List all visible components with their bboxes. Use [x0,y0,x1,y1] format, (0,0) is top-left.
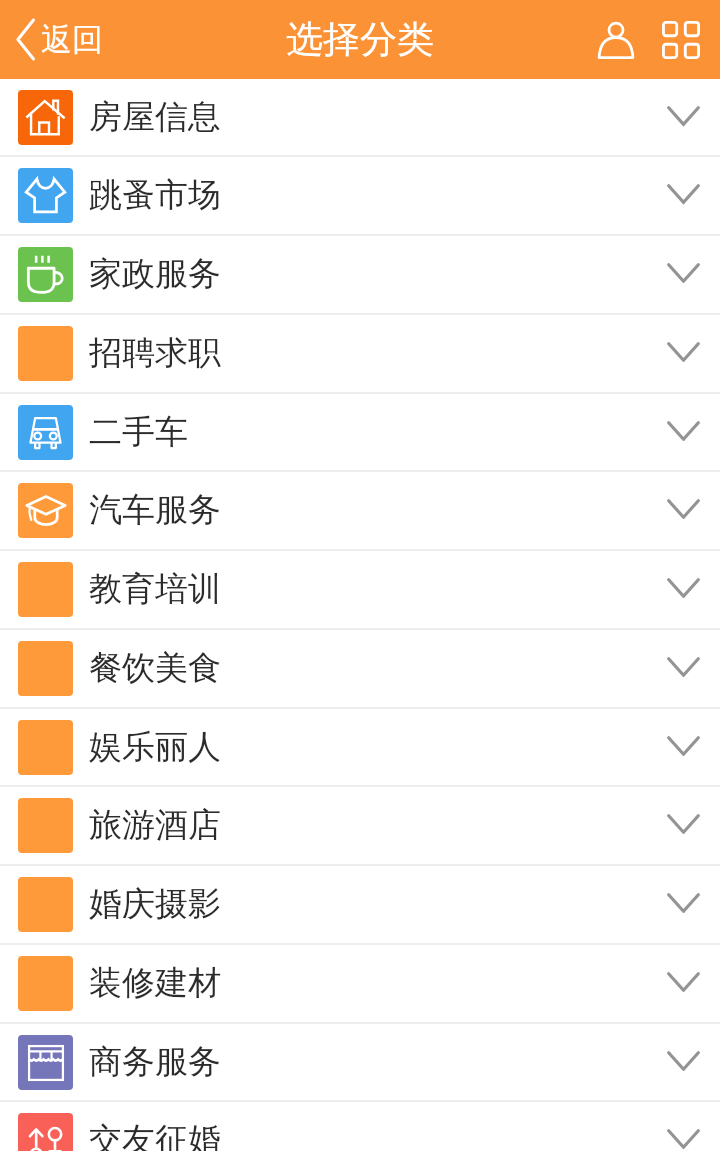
staticText: 餐饮美食 [89,647,221,689]
button[interactable]: 招聘求职 [0,315,720,391]
button[interactable]: 装修建材 [0,945,720,1021]
staticText: 旅游酒店 [89,804,221,846]
staticText: 选择分类 [286,16,434,63]
staticText: 娱乐丽人 [89,726,221,768]
button[interactable]: 二手车 [0,394,720,470]
button[interactable]: 跳蚤市场 [0,157,720,233]
staticText: 汽车服务 [89,489,221,531]
staticText: 跳蚤市场 [89,174,221,216]
staticText: 装修建材 [89,962,221,1004]
button[interactable]: 交友征婚 [0,1102,720,1151]
staticText: 婚庆摄影 [89,883,221,925]
button[interactable]: 返回 [0,8,119,71]
button[interactable]: 餐饮美食 [0,630,720,706]
staticText: 交友征婚 [89,1119,221,1151]
button[interactable]: 汽车服务 [0,472,720,548]
staticText: 房屋信息 [89,96,221,138]
button[interactable]: 商务服务 [0,1024,720,1100]
button[interactable]: 婚庆摄影 [0,866,720,942]
button[interactable]: Grid view [652,11,710,69]
staticText: 二手车 [89,411,188,453]
staticText: 教育培训 [89,568,221,610]
staticText: 招聘求职 [89,332,221,374]
button[interactable]: 家政服务 [0,236,720,312]
button[interactable]: 房屋信息 [0,79,720,155]
staticText: 商务服务 [89,1041,221,1083]
button[interactable]: 旅游酒店 [0,787,720,863]
staticText: 家政服务 [89,253,221,295]
button[interactable]: 娱乐丽人 [0,709,720,785]
staticText: 返回 [41,20,103,59]
button[interactable]: Account [587,11,645,69]
button[interactable]: 教育培训 [0,551,720,627]
